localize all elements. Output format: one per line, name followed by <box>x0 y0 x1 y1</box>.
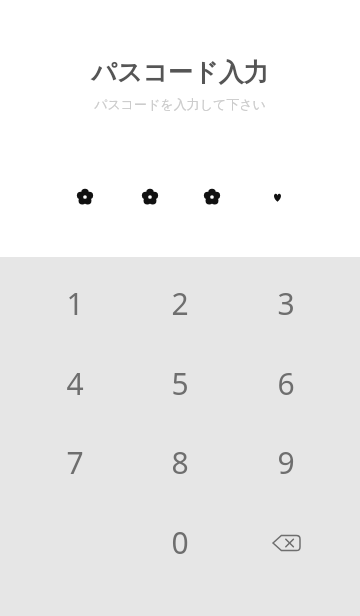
staticText: 5 <box>171 363 189 404</box>
button[interactable]: 7 <box>23 423 127 502</box>
staticText: パスコードを入力して下さい <box>94 96 266 112</box>
staticText: 4 <box>66 363 84 404</box>
button[interactable]: 5 <box>128 344 232 423</box>
button[interactable]: 9 <box>234 423 338 502</box>
button[interactable]: 3 <box>234 264 338 343</box>
button[interactable]: Delete <box>234 503 338 582</box>
button[interactable]: 1 <box>23 264 127 343</box>
button[interactable]: 6 <box>234 344 338 423</box>
staticText: 3 <box>277 283 295 324</box>
staticText: 8 <box>171 442 189 483</box>
button[interactable]: 0 <box>128 503 232 582</box>
button[interactable]: 4 <box>23 344 127 423</box>
button[interactable]: 2 <box>128 264 232 343</box>
staticText: 0 <box>171 522 189 563</box>
staticText: 1 <box>66 283 84 324</box>
staticText: 6 <box>277 363 295 404</box>
staticText: 9 <box>277 442 295 483</box>
staticText: 2 <box>171 283 189 324</box>
button[interactable]: 8 <box>128 423 232 502</box>
staticText: パスコード入力 <box>91 57 269 88</box>
staticText: 7 <box>66 442 84 483</box>
